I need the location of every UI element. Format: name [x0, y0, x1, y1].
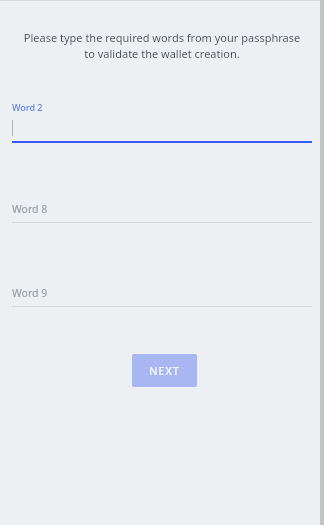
staticText: Word 9	[12, 286, 48, 300]
button[interactable]: Word 2	[12, 101, 312, 143]
staticText: Word 8	[12, 202, 48, 216]
button[interactable]: NEXT	[132, 354, 197, 387]
button[interactable]: Word 9	[12, 285, 312, 307]
staticText: Word 2	[12, 101, 43, 113]
staticText: NEXT	[149, 363, 180, 378]
staticText: Please type the required words from your…	[20, 30, 304, 62]
button[interactable]: Word 8	[12, 201, 312, 223]
